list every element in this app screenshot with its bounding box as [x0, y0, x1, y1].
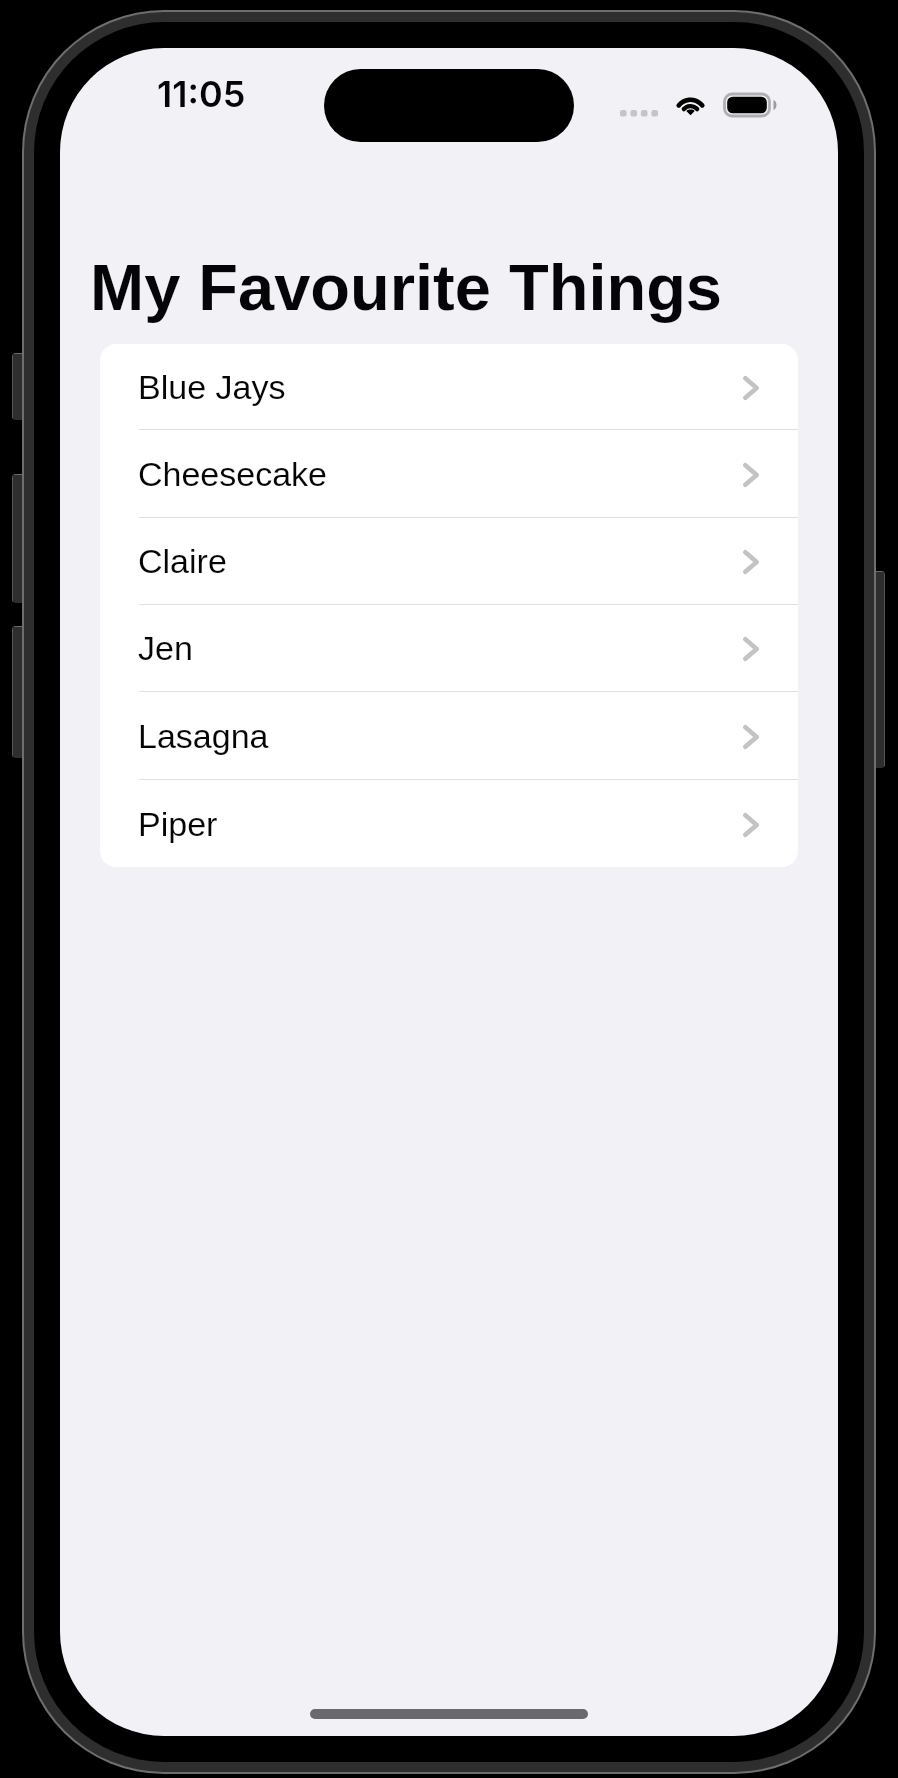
staticText: 11:05: [157, 72, 246, 116]
other: Open: [743, 376, 759, 400]
button[interactable]: Blue Jays, open details: [100, 344, 798, 429]
staticText: Claire: [138, 542, 227, 580]
staticText: Lasagna: [138, 717, 269, 755]
staticText: My Favourite Things: [90, 251, 723, 324]
button[interactable]: Lasagna, open details: [100, 692, 798, 779]
button[interactable]: Cheesecake, open details: [100, 430, 798, 517]
staticText: Cheesecake: [138, 455, 328, 493]
staticText: Blue Jays: [138, 368, 286, 406]
button[interactable]: Piper, open details: [100, 780, 798, 867]
other: Open: [743, 463, 759, 487]
other: Open: [743, 637, 759, 661]
button[interactable]: Claire, open details: [100, 518, 798, 604]
other: Open: [743, 813, 759, 837]
button[interactable]: Jen, open details: [100, 605, 798, 691]
staticText: Jen: [138, 629, 193, 667]
other: Battery full: [723, 92, 777, 118]
other: Wi-Fi: [673, 89, 708, 116]
other: Open: [743, 725, 759, 749]
other: Open: [743, 550, 759, 574]
staticText: Piper: [138, 805, 218, 843]
other: Cellular signal: [620, 110, 658, 117]
